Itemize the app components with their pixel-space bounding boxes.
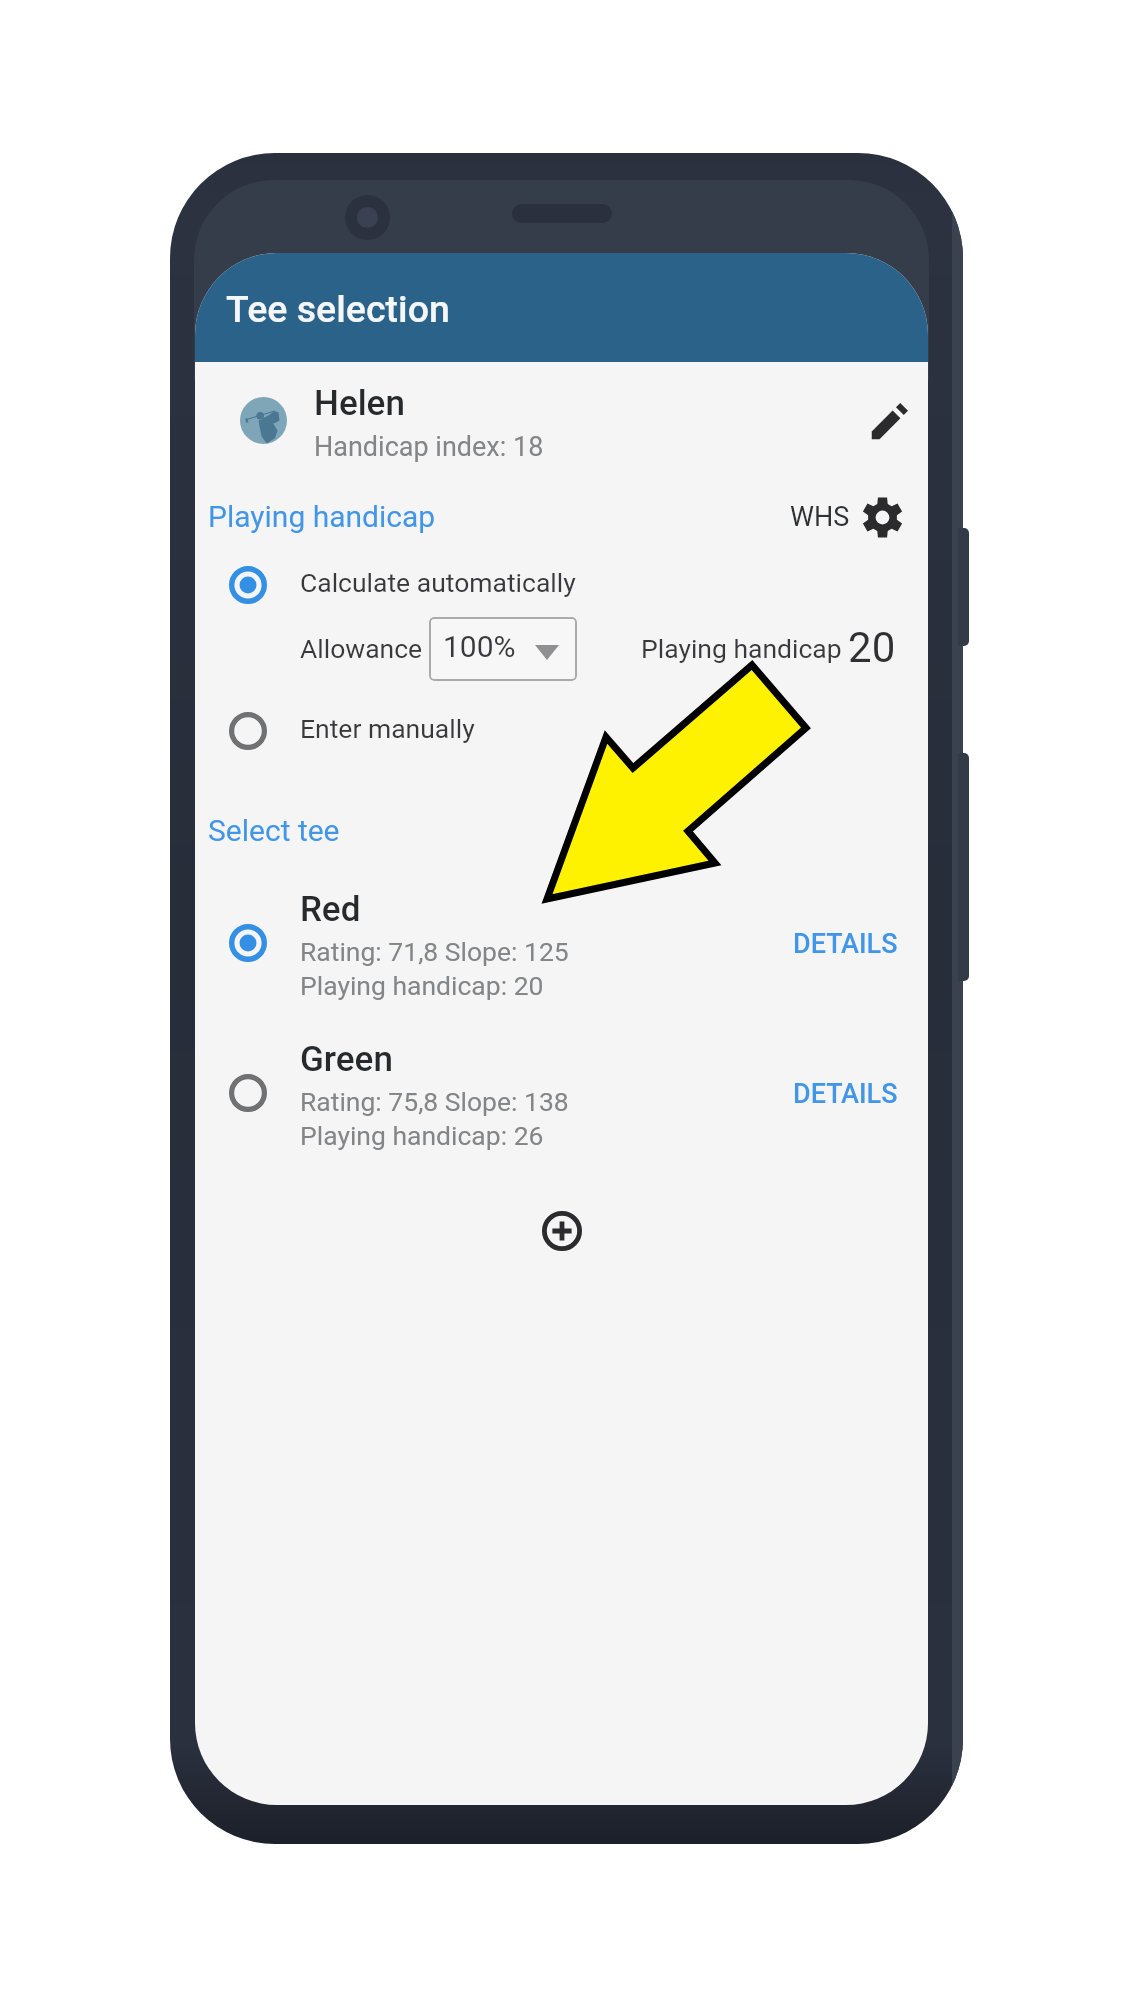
staticText: DETAILS [793,928,898,960]
button[interactable]: Add tee [529,1198,595,1264]
button[interactable]: DETAILS [770,915,920,973]
button[interactable]: Edit player [861,393,917,449]
button[interactable]: Helen [195,362,928,486]
staticText: Rating: 71,8 Slope: 125 [300,936,569,967]
staticText: Handicap index: 18 [314,431,544,463]
staticText: Allowance [300,633,423,664]
staticText: Calculate automatically [300,567,576,598]
button[interactable]: Enter manually [195,702,675,760]
button[interactable]: Calculate automatically [195,556,675,614]
staticText: Tee selection [226,287,450,331]
button[interactable]: Red [195,882,928,1012]
staticText: Select tee [208,813,340,848]
staticText: Red [300,889,361,930]
staticText: Enter manually [300,713,475,744]
staticText: Playing handicap: 26 [300,1120,544,1151]
staticText: WHS [790,501,850,533]
staticText: Playing handicap [208,499,436,534]
staticText: Green [300,1039,393,1080]
button[interactable]: WHS settings [776,490,913,544]
staticText: Playing handicap: 20 [300,970,544,1001]
staticText: 20 [848,623,896,672]
button[interactable]: DETAILS [770,1065,920,1123]
staticText: Helen [314,383,405,424]
staticText: Rating: 75,8 Slope: 138 [300,1086,569,1117]
staticText: Playing handicap [641,633,842,664]
button[interactable]: Green [195,1032,928,1162]
staticText: DETAILS [793,1078,898,1110]
button[interactable]: Allowance 100% [429,617,577,681]
staticText: 100% [443,629,516,664]
